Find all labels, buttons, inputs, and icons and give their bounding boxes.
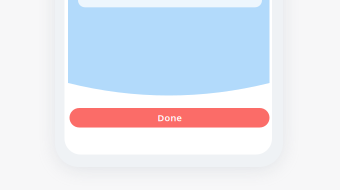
button[interactable]: Done — [69, 108, 269, 127]
staticText: Done — [157, 112, 181, 124]
